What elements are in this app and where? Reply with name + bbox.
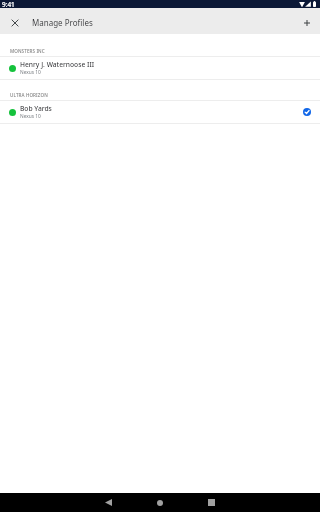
staticText: Nexus 10 <box>20 113 41 120</box>
button[interactable]: Add profile <box>297 13 316 32</box>
button[interactable]: Henry J. Waternoose III <box>0 56 320 80</box>
button[interactable]: Bob Yards <box>0 100 320 124</box>
staticText: Nexus 10 <box>20 69 41 76</box>
staticText: MONSTERS INC <box>10 48 45 54</box>
staticText: 9:41 <box>2 0 15 8</box>
button[interactable]: Back <box>90 493 126 512</box>
staticText: Bob Yards <box>20 104 52 113</box>
button[interactable]: Close <box>5 13 24 32</box>
button[interactable]: Recents <box>193 493 229 512</box>
staticText: Henry J. Waternoose III <box>20 60 95 69</box>
staticText: Manage Profiles <box>32 17 93 28</box>
staticText: ULTRA HORIZON <box>10 92 48 98</box>
button[interactable]: Home <box>142 493 178 512</box>
